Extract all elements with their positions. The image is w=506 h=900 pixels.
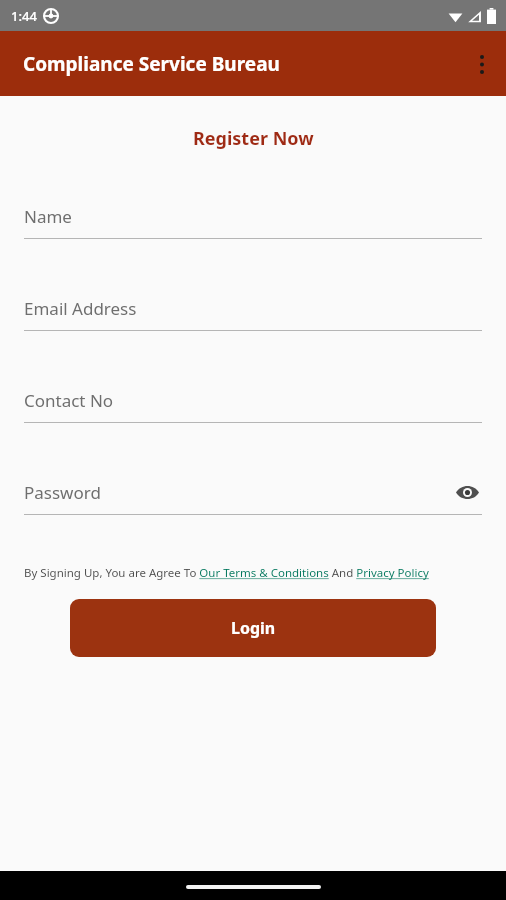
button[interactable]: More options	[458, 40, 506, 88]
staticText: By Signing Up, You are Agree To Our Term…	[24, 565, 429, 581]
staticText: Email Address	[24, 297, 137, 320]
staticText: Name	[24, 205, 72, 228]
button[interactable]: Login	[70, 599, 436, 657]
staticText: Compliance Service Bureau	[23, 51, 280, 77]
staticText: Register Now	[193, 126, 314, 151]
button[interactable]: Contact No	[24, 387, 482, 423]
staticText: 1:44	[11, 7, 37, 25]
staticText: Password	[24, 481, 101, 504]
staticText: Login	[231, 617, 276, 639]
button[interactable]: Password	[24, 479, 482, 515]
button[interactable]: Name	[24, 203, 482, 239]
staticText: Contact No	[24, 389, 114, 412]
button[interactable]: Email Address	[24, 295, 482, 331]
button[interactable]: Show password	[452, 479, 482, 505]
button[interactable]: By Signing Up, You are Agree To Our Term…	[24, 565, 436, 581]
